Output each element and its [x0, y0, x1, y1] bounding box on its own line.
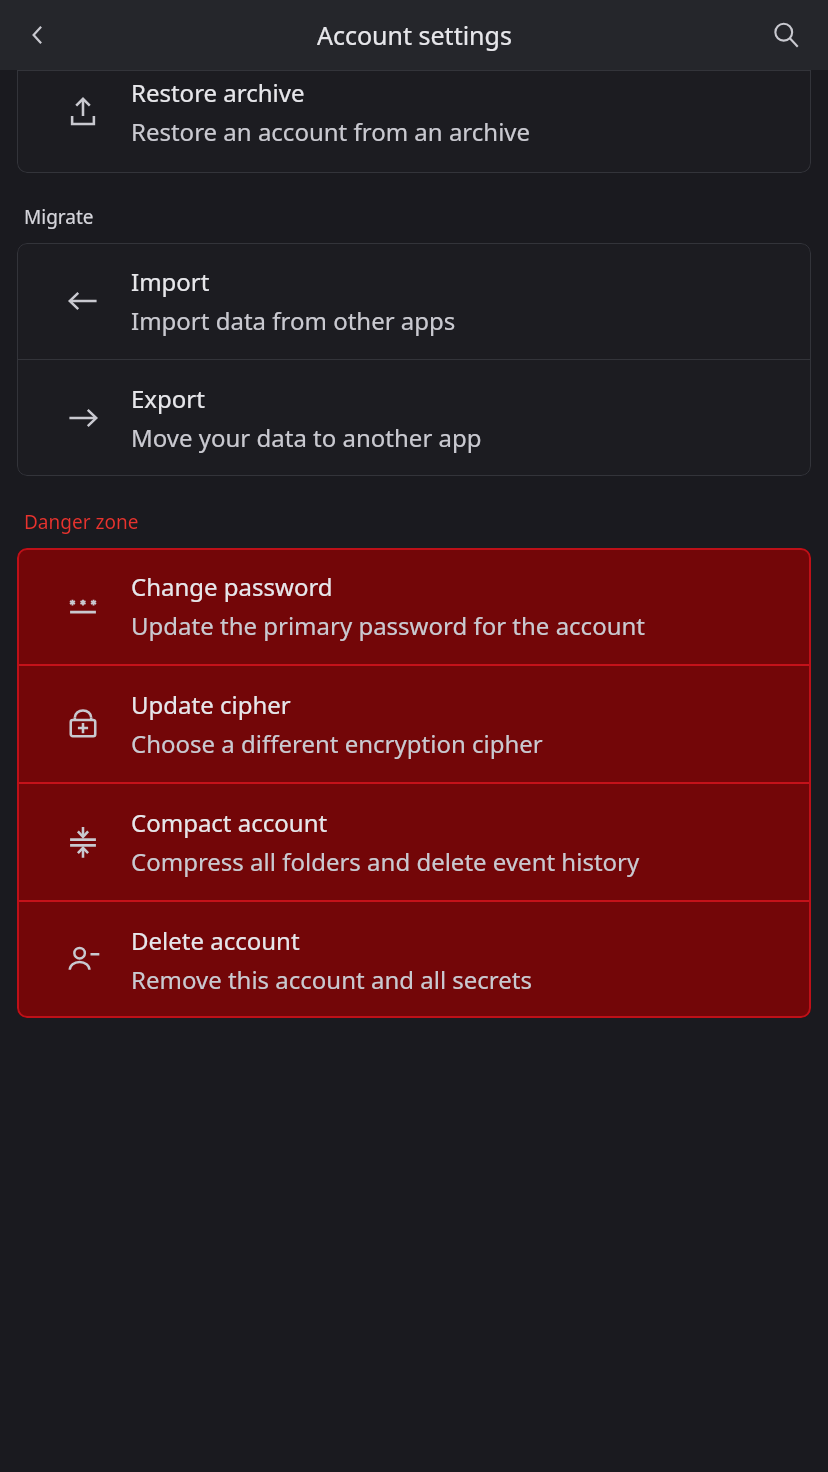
- staticText: Move your data to another app: [131, 421, 482, 454]
- button[interactable]: Compact account: [17, 784, 811, 900]
- button[interactable]: Change password: [17, 548, 811, 664]
- staticText: Choose a different encryption cipher: [131, 727, 543, 760]
- button[interactable]: Update cipher: [17, 666, 811, 782]
- button[interactable]: Back: [14, 11, 62, 59]
- staticText: Account settings: [317, 18, 512, 52]
- staticText: Update cipher: [131, 688, 291, 721]
- button[interactable]: Delete account: [17, 902, 811, 1018]
- staticText: Update the primary password for the acco…: [131, 609, 645, 642]
- staticText: Remove this account and all secrets: [131, 963, 532, 996]
- button[interactable]: Import: [17, 243, 811, 359]
- staticText: Import data from other apps: [131, 304, 456, 337]
- staticText: Compress all folders and delete event hi…: [131, 845, 640, 878]
- staticText: Compact account: [131, 806, 328, 839]
- staticText: Restore archive: [131, 76, 305, 109]
- staticText: Change password: [131, 570, 333, 603]
- staticText: Migrate: [24, 204, 94, 230]
- staticText: Restore an account from an archive: [131, 115, 531, 148]
- staticText: Export: [131, 382, 205, 415]
- button[interactable]: Export: [17, 360, 811, 476]
- staticText: Danger zone: [24, 509, 139, 535]
- button[interactable]: Search: [762, 11, 810, 59]
- button[interactable]: Restore archive: [17, 70, 811, 173]
- staticText: Delete account: [131, 924, 300, 957]
- staticText: Import: [131, 265, 210, 298]
